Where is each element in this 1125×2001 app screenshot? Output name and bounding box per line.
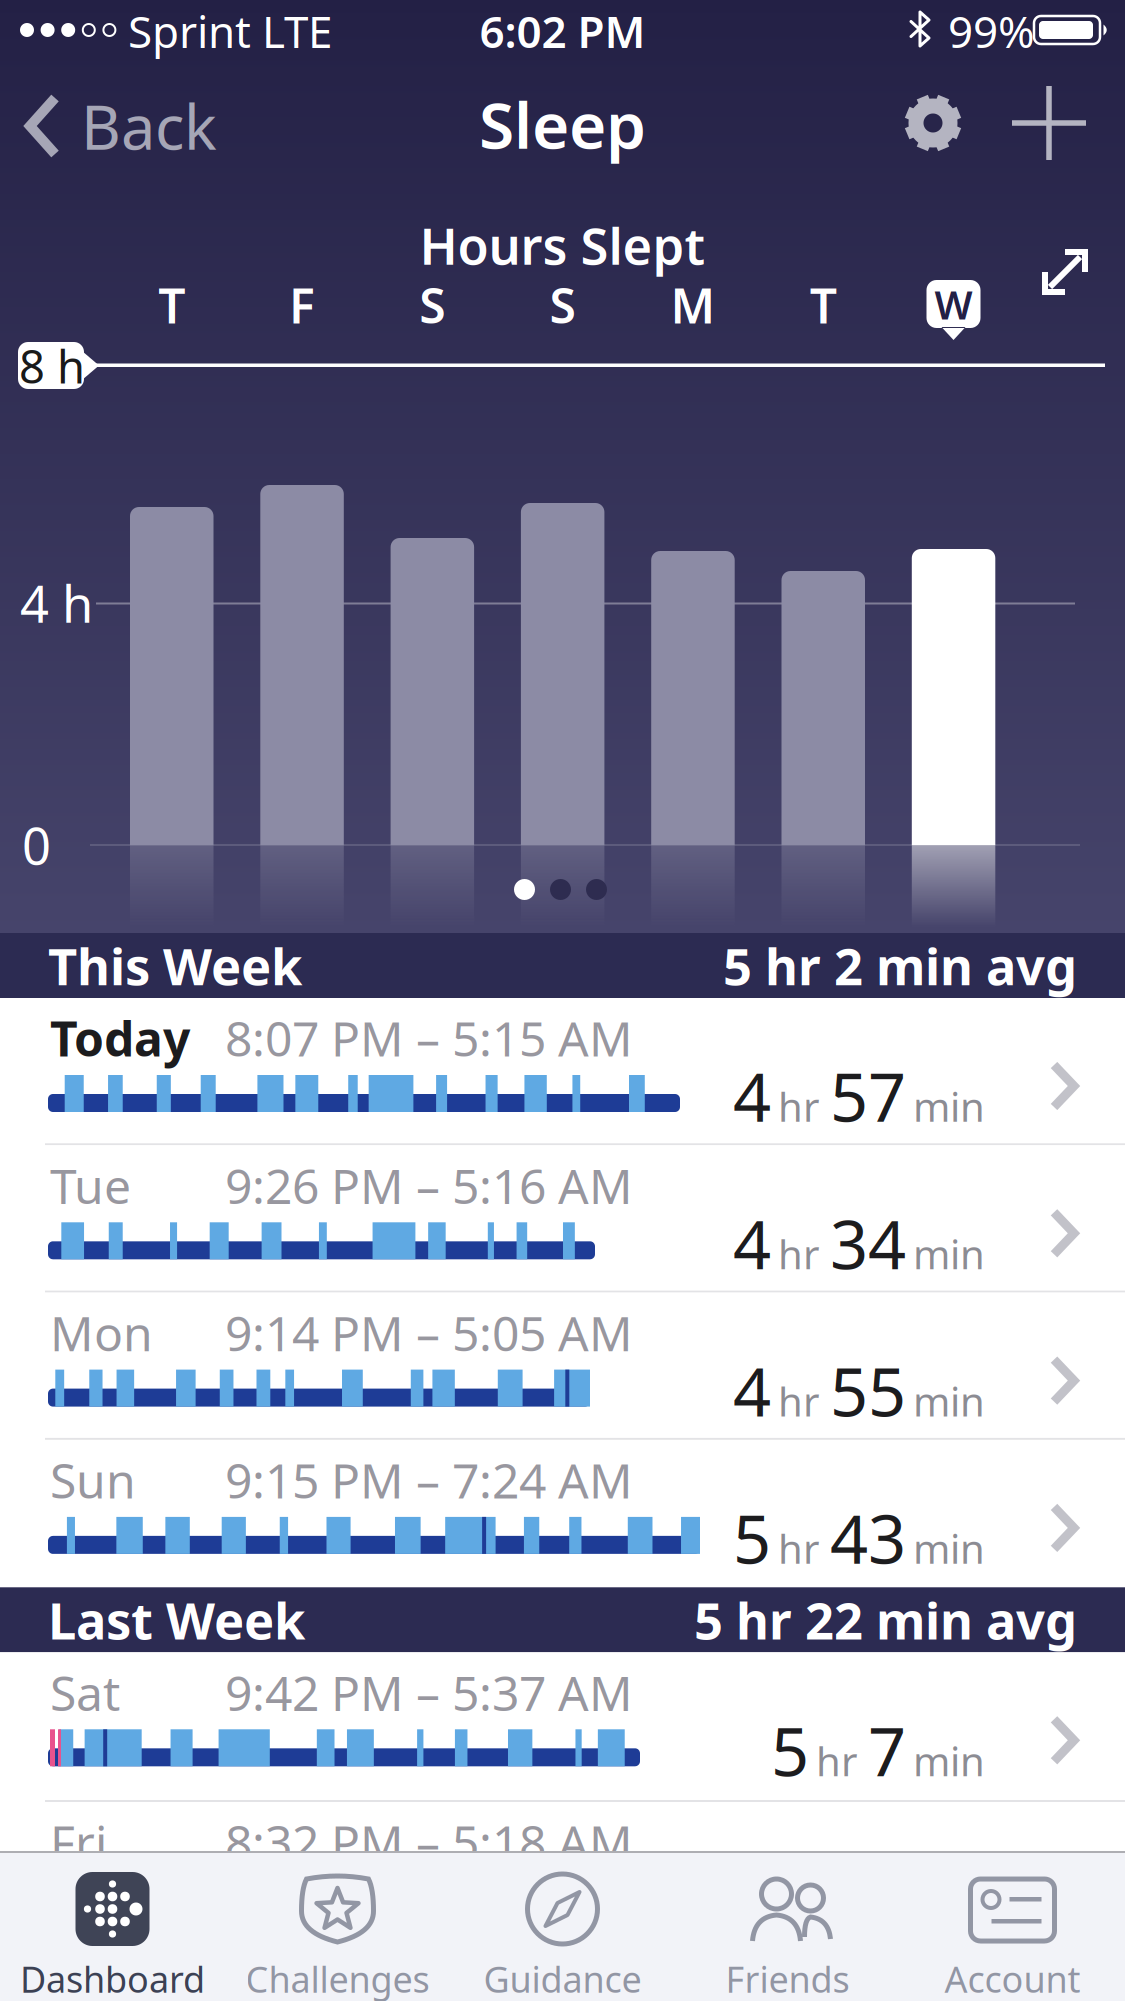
button[interactable]: Friends: [675, 1853, 900, 2001]
staticText: hr: [778, 1522, 820, 1575]
staticText: 0: [22, 811, 51, 879]
staticText: 4: [733, 1346, 771, 1435]
staticText: Friends: [725, 1955, 849, 2001]
button[interactable]: Tue: [0, 1145, 1125, 1293]
staticText: 5: [733, 1494, 771, 1582]
staticText: Hours Slept: [419, 211, 705, 279]
staticText: S: [419, 273, 445, 337]
staticText: 4: [733, 1052, 771, 1140]
button[interactable]: [514, 879, 607, 900]
staticText: Mon: [50, 1301, 153, 1364]
staticText: 8:07 PM – 5:15 AM: [225, 1006, 633, 1070]
staticText: F: [289, 273, 315, 337]
staticText: T: [810, 273, 837, 337]
staticText: Dashboard: [20, 1955, 205, 2001]
staticText: 8 h: [19, 336, 85, 396]
button[interactable]: Dashboard: [0, 1853, 225, 2001]
button[interactable]: [905, 93, 961, 153]
staticText: hr: [816, 1884, 858, 1937]
staticText: This Week: [48, 932, 302, 999]
staticText: 4 h: [20, 569, 93, 637]
staticText: min: [913, 1734, 985, 1787]
button[interactable]: Sat: [0, 1652, 1125, 1802]
button[interactable]: Fri: [0, 1802, 1125, 1949]
staticText: Sprint: [128, 2, 251, 60]
button[interactable]: Back: [25, 60, 217, 192]
staticText: 5 hr 2 min avg: [723, 932, 1077, 999]
staticText: 5: [771, 1706, 809, 1794]
staticText: hr: [816, 1734, 858, 1787]
staticText: 57: [830, 1052, 906, 1140]
staticText: Account: [944, 1955, 1080, 2001]
button[interactable]: Challenges: [225, 1853, 450, 2001]
staticText: hr: [778, 1374, 820, 1427]
staticText: W: [934, 277, 972, 330]
button[interactable]: Mon: [0, 1293, 1125, 1440]
staticText: Sleep: [479, 81, 646, 166]
staticText: min: [913, 1884, 985, 1937]
staticText: Sun: [50, 1448, 136, 1512]
staticText: 34: [830, 1199, 906, 1287]
staticText: min: [913, 1080, 985, 1133]
staticText: Sat: [50, 1660, 120, 1724]
staticText: M: [670, 273, 715, 337]
button[interactable]: [1012, 86, 1086, 160]
staticText: min: [913, 1522, 985, 1575]
staticText: min: [913, 1374, 985, 1427]
staticText: Challenges: [245, 1955, 429, 2001]
staticText: Back: [81, 85, 217, 167]
button[interactable]: W: [926, 280, 980, 342]
staticText: 7: [868, 1706, 906, 1794]
staticText: Guidance: [483, 1955, 641, 2001]
staticText: 99%: [948, 2, 1035, 60]
button[interactable]: [1037, 244, 1093, 300]
staticText: 43: [830, 1494, 906, 1582]
staticText: T: [158, 273, 185, 337]
staticText: 55: [830, 1346, 906, 1435]
staticText: Fri: [50, 1810, 107, 1874]
staticText: S: [550, 273, 576, 337]
staticText: 4: [733, 1199, 771, 1287]
staticText: hr: [778, 1080, 820, 1133]
staticText: hr: [778, 1227, 820, 1280]
staticText: 5 hr 22 min avg: [694, 1586, 1077, 1653]
staticText: 6:02 PM: [479, 2, 645, 60]
staticText: Last Week: [48, 1586, 305, 1653]
staticText: LTE: [262, 2, 332, 60]
staticText: Tue: [50, 1153, 131, 1217]
button[interactable]: Guidance: [450, 1853, 675, 2001]
staticText: 5: [771, 1856, 809, 1944]
button[interactable]: Sun: [0, 1440, 1125, 1587]
staticText: min: [913, 1227, 985, 1280]
staticText: 9:14 PM – 5:05 AM: [225, 1301, 633, 1364]
staticText: 9:26 PM – 5:16 AM: [225, 1153, 633, 1217]
staticText: Today: [50, 1006, 190, 1070]
staticText: 9:15 PM – 7:24 AM: [225, 1448, 633, 1512]
staticText: 9:42 PM – 5:37 AM: [225, 1660, 633, 1724]
button[interactable]: Today: [0, 998, 1125, 1145]
button[interactable]: Account: [900, 1853, 1125, 2001]
staticText: 8:32 PM – 5:18 AM: [225, 1810, 633, 1874]
